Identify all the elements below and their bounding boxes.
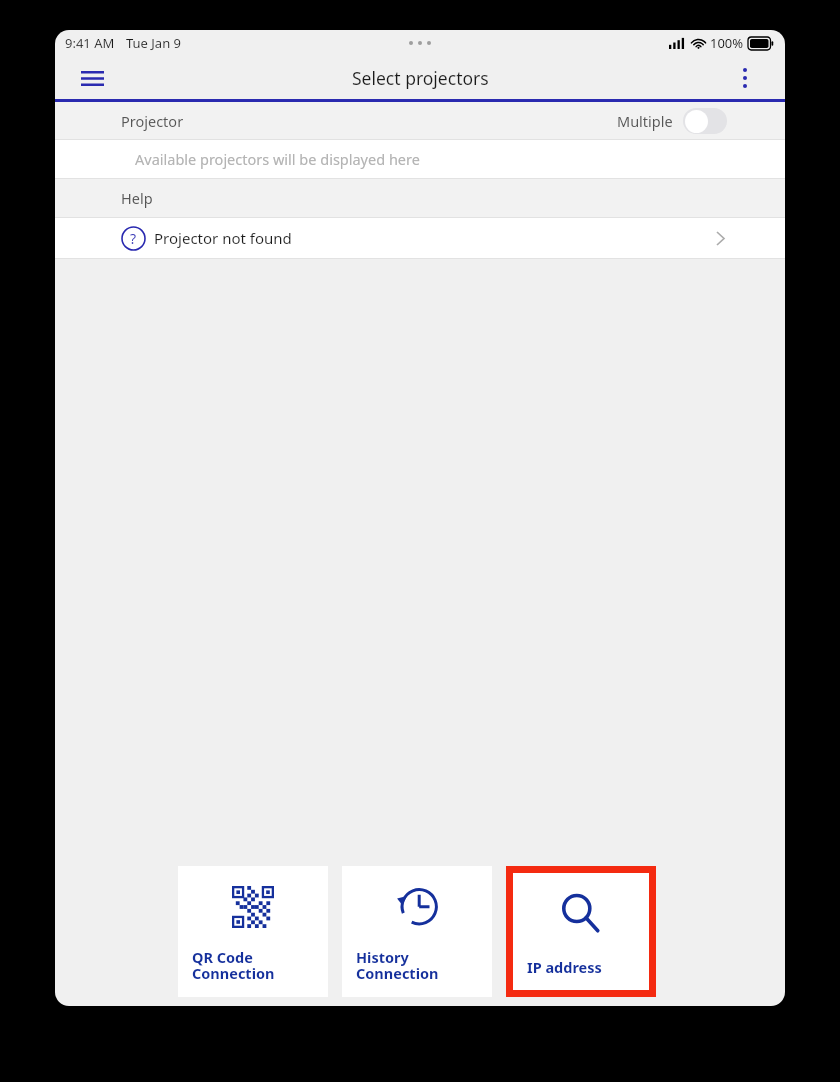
button[interactable]: IP address xyxy=(513,873,649,990)
staticText: Available projectors will be displayed h… xyxy=(135,149,420,169)
staticText: QR Code Connection xyxy=(192,947,275,984)
staticText: Multiple xyxy=(617,111,673,131)
staticText: IP address xyxy=(527,957,602,977)
staticText: 9:41 AM xyxy=(65,34,115,52)
staticText: Tue Jan 9 xyxy=(126,34,182,52)
staticText: History Connection xyxy=(356,947,439,984)
staticText: 100% xyxy=(710,34,744,52)
staticText: Projector not found xyxy=(154,228,292,248)
staticText: ? xyxy=(130,229,137,248)
staticText: Projector xyxy=(121,111,184,131)
staticText: Select projectors xyxy=(352,66,489,90)
button[interactable]: Menu xyxy=(71,57,113,99)
button[interactable]: ? xyxy=(55,218,785,258)
button[interactable]: Multiple xyxy=(617,108,727,134)
staticText: Help xyxy=(121,188,153,208)
button[interactable]: More options xyxy=(725,58,765,98)
button[interactable]: QR Code Connection xyxy=(178,866,328,997)
button[interactable]: History Connection xyxy=(342,866,492,997)
